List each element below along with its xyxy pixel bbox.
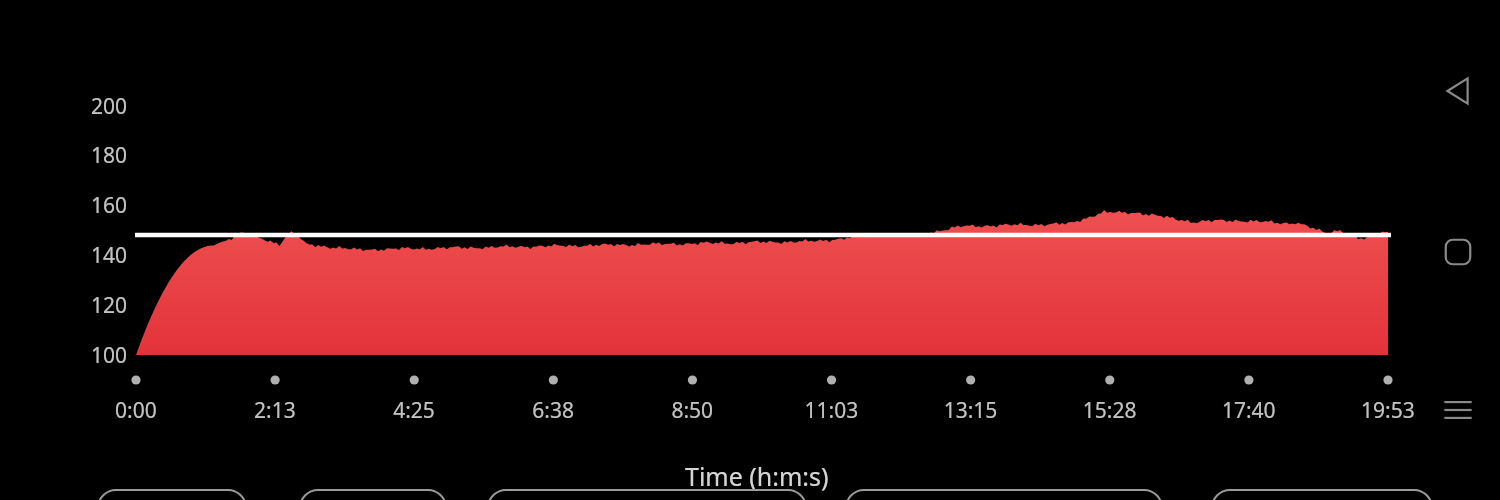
button[interactable]: [0, 0, 1500, 500]
button[interactable]: Recent apps: [1440, 392, 1476, 428]
button[interactable]: Back: [1434, 70, 1482, 112]
button[interactable]: Home: [1440, 234, 1476, 270]
